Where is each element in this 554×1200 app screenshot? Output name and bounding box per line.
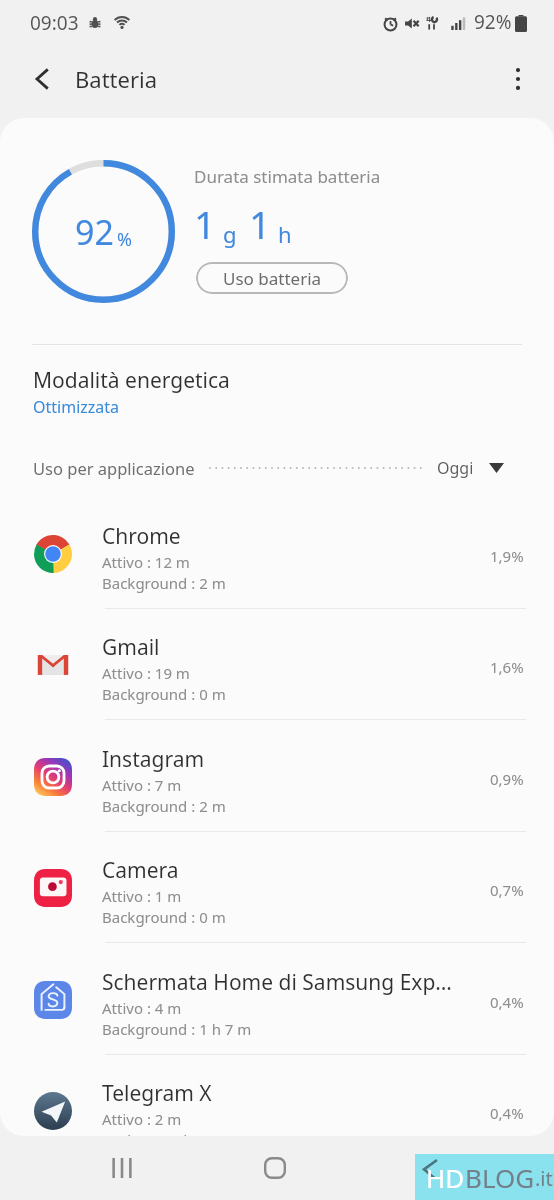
staticText: %	[117, 227, 132, 252]
button[interactable]: Telegram X	[0, 1055, 554, 1136]
button[interactable]: Home	[250, 1143, 300, 1193]
staticText: 92	[75, 209, 114, 255]
staticText: 0,9%	[490, 769, 524, 789]
button[interactable]: Oggi	[437, 457, 504, 479]
staticText: 0,4%	[490, 992, 524, 1012]
staticText: Attivo : 19 m	[102, 663, 190, 683]
staticText: 09:03	[30, 10, 79, 36]
staticText: Background : 0 m	[102, 907, 226, 927]
staticText: Camera	[102, 856, 179, 885]
staticText: Background : 5 m	[102, 1130, 226, 1136]
staticText: 0,4%	[490, 1103, 524, 1123]
staticText: Telegram X	[102, 1079, 212, 1108]
staticText: Attivo : 4 m	[102, 998, 182, 1018]
button[interactable]: More options	[496, 57, 540, 101]
staticText: Attivo : 2 m	[102, 1109, 182, 1129]
staticText: Attivo : 12 m	[102, 552, 190, 572]
button[interactable]: Schermata Home di Samsung Exp…	[0, 944, 554, 1055]
staticText: 1	[249, 198, 271, 250]
staticText: Background : 2 m	[102, 796, 226, 816]
staticText: Attivo : 1 m	[102, 886, 182, 906]
button[interactable]: Modalità energetica	[0, 366, 554, 418]
button[interactable]: Chrome	[0, 498, 554, 609]
button[interactable]: Back	[407, 1143, 457, 1193]
staticText: Background : 1 h 7 m	[102, 1019, 252, 1039]
staticText: Schermata Home di Samsung Exp…	[102, 968, 452, 997]
staticText: Uso per applicazione	[33, 457, 195, 479]
staticText: Batteria	[75, 64, 158, 94]
staticText: HD	[426, 1160, 465, 1195]
staticText: 0,7%	[490, 880, 524, 900]
staticText: Chrome	[102, 522, 181, 551]
staticText: h	[278, 219, 292, 249]
staticText: Oggi	[437, 457, 474, 479]
staticText: Background : 2 m	[102, 573, 226, 593]
staticText: 1,6%	[490, 657, 524, 677]
button[interactable]: Recents	[97, 1143, 147, 1193]
staticText: Background : 0 m	[102, 684, 226, 704]
staticText: .it	[535, 1165, 553, 1192]
staticText: Ottimizzata	[33, 396, 120, 418]
staticText: Attivo : 7 m	[102, 775, 182, 795]
staticText: Durata stimata batteria	[194, 165, 381, 188]
staticText: Modalità energetica	[33, 366, 230, 395]
staticText: Uso batteria	[223, 267, 322, 290]
staticText: Gmail	[102, 633, 160, 662]
staticText: BLOG	[465, 1160, 535, 1195]
button[interactable]: Uso batteria	[196, 262, 348, 294]
staticText: g	[223, 219, 237, 249]
button[interactable]: Gmail	[0, 609, 554, 720]
staticText: Instagram	[102, 745, 205, 774]
staticText: 1	[194, 198, 216, 250]
staticText: 92%	[474, 9, 512, 35]
staticText: 1,9%	[490, 546, 524, 566]
button[interactable]: Camera	[0, 832, 554, 943]
button[interactable]: Back	[22, 58, 64, 100]
button[interactable]: Instagram	[0, 721, 554, 832]
